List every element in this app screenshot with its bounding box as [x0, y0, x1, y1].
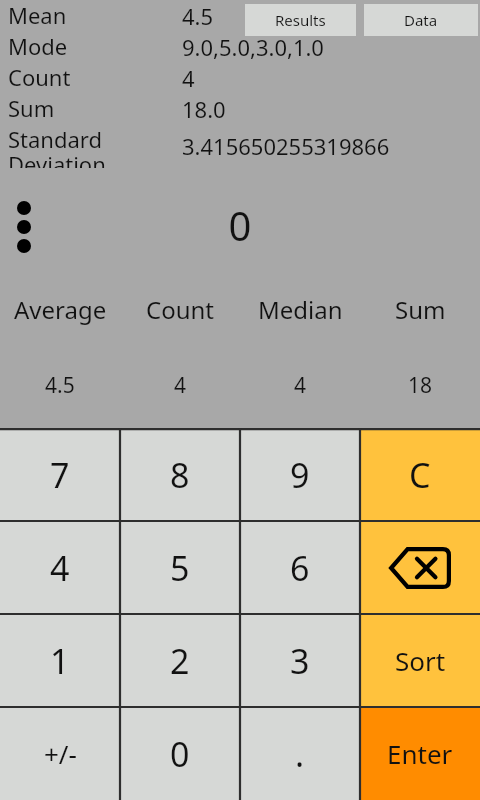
staticText: 3 — [290, 638, 310, 684]
staticText: Data — [404, 10, 438, 30]
button[interactable]: 1 — [0, 614, 120, 707]
staticText: 18 — [408, 371, 433, 400]
button[interactable]: +/- — [0, 707, 120, 800]
staticText: 5 — [170, 545, 190, 591]
button[interactable]: Enter — [360, 707, 480, 800]
staticText: 7 — [50, 452, 70, 498]
button[interactable]: Sort — [360, 614, 480, 707]
staticText: 6 — [290, 545, 310, 591]
button[interactable]: Data — [364, 4, 478, 36]
staticText: 4 — [174, 371, 187, 400]
staticText: 4 — [50, 545, 70, 591]
staticText: 9.0,5.0,3.0,1.0 — [182, 32, 324, 62]
button[interactable]: 4 — [0, 521, 120, 614]
staticText: 4 — [182, 63, 195, 93]
button[interactable]: 0 — [120, 707, 240, 800]
staticText: Sum — [395, 293, 446, 326]
button[interactable]: 7 — [0, 428, 120, 521]
button[interactable]: More options — [6, 196, 42, 260]
staticText: Sum — [8, 93, 176, 123]
button[interactable]: 5 — [120, 521, 240, 614]
staticText: . — [295, 731, 305, 777]
staticText: Mean — [8, 0, 176, 30]
staticText: Median — [258, 293, 343, 326]
staticText: 4.5 — [45, 371, 75, 400]
staticText: Mode — [8, 31, 176, 61]
staticText: 9 — [290, 452, 310, 498]
staticText: 1 — [50, 638, 70, 684]
staticText: 18.0 — [182, 94, 226, 124]
staticText: C — [409, 452, 431, 498]
staticText: 4 — [294, 371, 307, 400]
staticText: 4.5 — [182, 1, 214, 31]
staticText: Standard Deviation — [8, 124, 176, 168]
button[interactable]: 9 — [240, 428, 360, 521]
staticText: Results — [275, 10, 326, 30]
staticText: +/- — [44, 736, 77, 771]
button[interactable]: Results — [245, 4, 356, 36]
staticText: Sort — [395, 643, 446, 678]
staticText: 0 — [170, 731, 190, 777]
staticText: Average — [14, 293, 107, 326]
staticText: 0 — [90, 198, 390, 252]
button[interactable]: Backspace — [360, 521, 480, 614]
staticText: Count — [8, 62, 176, 92]
button[interactable]: 8 — [120, 428, 240, 521]
staticText: 2 — [170, 638, 190, 684]
button[interactable]: . — [240, 707, 360, 800]
button[interactable]: 2 — [120, 614, 240, 707]
staticText: 3.415650255319866 — [182, 131, 390, 161]
button[interactable]: 6 — [240, 521, 360, 614]
staticText: Count — [146, 293, 215, 326]
staticText: Enter — [387, 736, 453, 771]
button[interactable]: 3 — [240, 614, 360, 707]
staticText: 8 — [170, 452, 190, 498]
button[interactable]: C — [360, 428, 480, 521]
